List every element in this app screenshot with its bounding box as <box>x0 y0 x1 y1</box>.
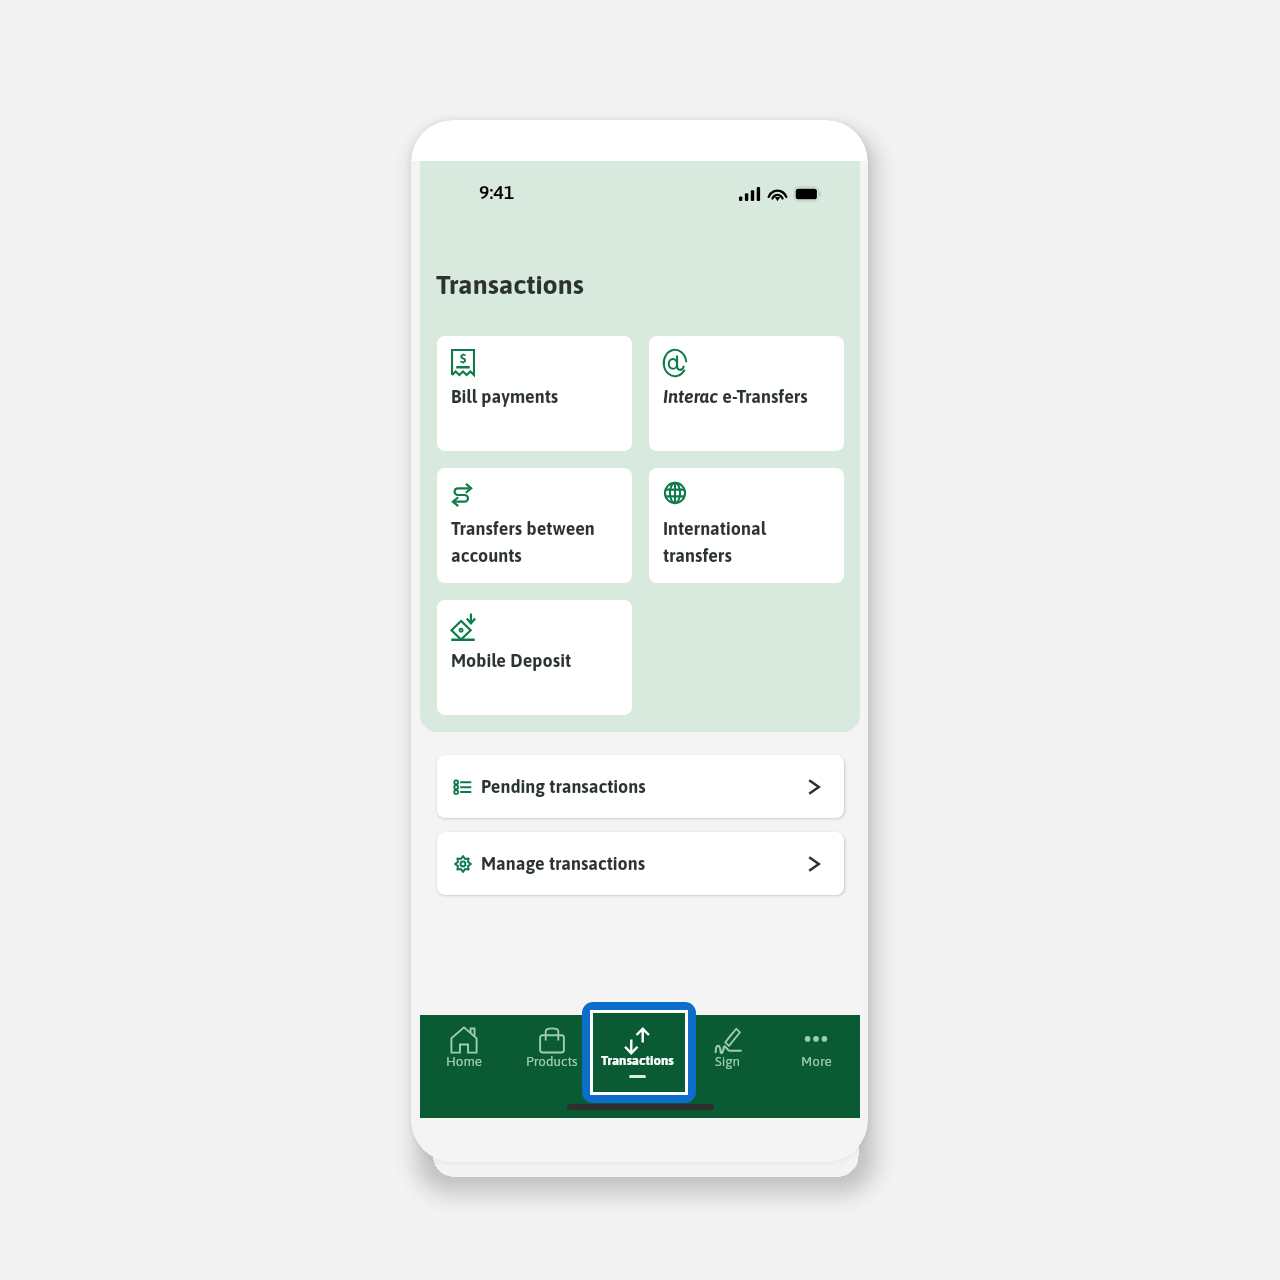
button[interactable]: Products <box>508 1015 596 1069</box>
staticText: Sign <box>715 1053 741 1068</box>
staticText: Products <box>526 1053 578 1068</box>
other: Sign <box>714 1026 742 1054</box>
staticText: 9:41 <box>479 181 515 203</box>
staticText: Bill payments <box>451 386 559 407</box>
button[interactable]: Transfers between accounts <box>437 468 632 583</box>
staticText: International transfers <box>663 518 836 566</box>
other: Products <box>538 1026 566 1054</box>
staticText: Transfers between accounts <box>451 518 624 566</box>
staticText: Mobile Deposit <box>451 650 572 671</box>
staticText: Interac e-Transfers <box>663 386 808 407</box>
staticText: $ <box>460 351 467 366</box>
staticText: Manage transactions <box>481 853 646 874</box>
staticText: Transactions <box>601 1053 674 1068</box>
button[interactable]: Home <box>420 1015 508 1069</box>
button[interactable]: Sign <box>684 1015 772 1069</box>
staticText: Home <box>446 1053 483 1068</box>
other: More <box>802 1026 830 1054</box>
staticText: More <box>801 1053 832 1068</box>
button[interactable]: Manage transactions <box>437 832 844 895</box>
staticText: Transactions <box>436 269 584 300</box>
button[interactable]: Interac e-Transfers <box>649 336 844 451</box>
other: Home <box>450 1026 478 1054</box>
staticText: Pending transactions <box>481 776 646 797</box>
button[interactable]: Pending transactions <box>437 755 844 818</box>
button[interactable]: International transfers <box>649 468 844 583</box>
button[interactable]: $ <box>437 336 632 451</box>
button[interactable]: More <box>772 1015 860 1069</box>
button[interactable]: Transactions <box>582 1002 696 1103</box>
button[interactable]: Mobile Deposit <box>437 600 632 715</box>
